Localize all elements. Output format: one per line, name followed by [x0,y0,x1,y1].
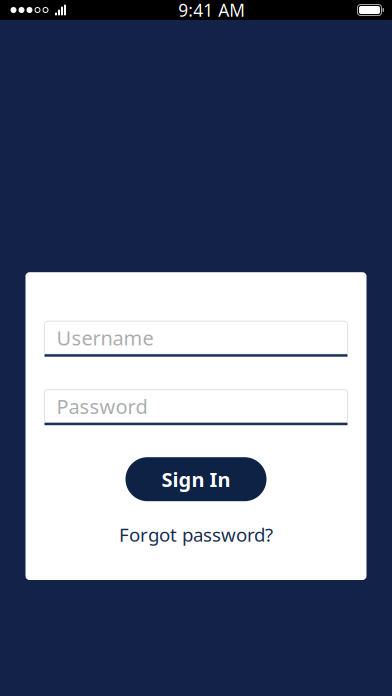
button[interactable]: Sign In [125,457,266,501]
staticText: 9:41 AM [178,0,245,21]
staticText: Forgot password? [119,522,273,547]
staticText: Username [56,324,153,351]
button[interactable]: Password [44,390,347,425]
staticText: Sign In [161,466,230,492]
button[interactable]: Forgot password? [111,517,281,552]
button[interactable]: Username [44,321,347,357]
staticText: Password [56,393,147,419]
